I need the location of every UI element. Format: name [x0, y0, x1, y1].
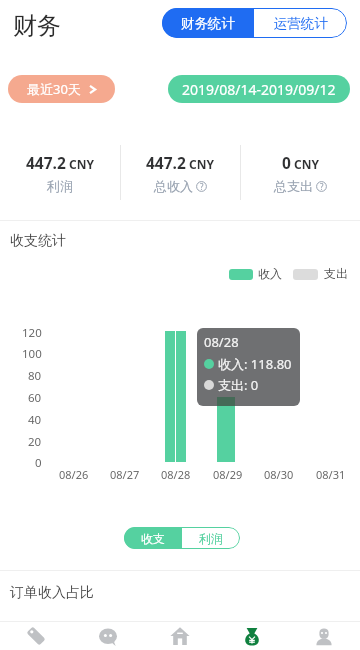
staticText: 运营统计: [274, 15, 328, 32]
staticText: 利润: [47, 178, 73, 194]
button[interactable]: 利润: [182, 527, 240, 549]
button[interactable]: 2019/08/14-2019/09/12: [168, 75, 350, 103]
staticText: 08/28: [204, 333, 239, 351]
staticText: 收支统计: [10, 232, 66, 250]
button[interactable]: 最近30天: [8, 75, 115, 103]
button[interactable]: Profile: [288, 622, 360, 650]
staticText: 最近30天: [27, 80, 81, 98]
button[interactable]: Messages: [72, 622, 144, 650]
staticText: 总收入: [154, 178, 193, 194]
staticText: 120: [22, 325, 42, 341]
staticText: 支出: [324, 266, 348, 281]
button[interactable]: Tags: [0, 622, 72, 650]
staticText: CNY: [69, 156, 94, 172]
staticText: 08/28: [161, 467, 191, 482]
staticText: 0: [35, 455, 42, 471]
staticText: ?: [200, 181, 204, 192]
staticText: 利润: [199, 531, 223, 546]
button[interactable]: 运营统计: [254, 8, 347, 38]
staticText: 100: [22, 346, 42, 362]
staticText: 40: [28, 412, 42, 428]
staticText: 08/26: [59, 467, 89, 482]
button[interactable]: 财务统计: [162, 8, 254, 38]
staticText: 60: [28, 390, 42, 406]
staticText: 08/27: [110, 467, 140, 482]
staticText: 08/30: [264, 467, 294, 482]
staticText: 财务统计: [181, 15, 235, 32]
button[interactable]: 收支: [124, 527, 182, 549]
staticText: 80: [28, 368, 42, 384]
staticText: 收入: [258, 266, 282, 281]
staticText: 订单收入占比: [10, 584, 94, 602]
button[interactable]: Home: [144, 622, 216, 650]
staticText: ?: [320, 181, 324, 192]
staticText: 0: [282, 152, 291, 173]
staticText: 20: [28, 434, 42, 450]
staticText: 08/31: [316, 467, 346, 482]
staticText: 支出: 0: [218, 376, 259, 394]
staticText: 08/29: [213, 467, 243, 482]
staticText: CNY: [294, 156, 319, 172]
staticText: 财务: [13, 11, 61, 41]
staticText: 447.2: [26, 152, 66, 173]
staticText: 2019/08/14-2019/09/12: [182, 80, 336, 99]
staticText: 447.2: [146, 152, 186, 173]
staticText: CNY: [189, 156, 214, 172]
button[interactable]: Finance: [216, 622, 288, 650]
staticText: 总支出: [274, 178, 313, 194]
staticText: 收入: 118.80: [218, 355, 292, 373]
staticText: 收支: [141, 531, 165, 546]
